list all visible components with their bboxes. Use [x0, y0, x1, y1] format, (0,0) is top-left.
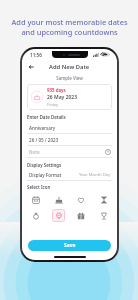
button[interactable]: 26 / 05 / 2023 [22, 134, 117, 145]
button[interactable]: Display Format [22, 170, 117, 180]
staticText: 11:56 [30, 52, 42, 58]
button[interactable]: Ring [29, 209, 42, 222]
staticText: Sample View [22, 75, 117, 81]
button[interactable]: Calendar [29, 193, 42, 206]
staticText: 26 / 05 / 2023 [29, 137, 59, 143]
button[interactable]: Gift [74, 209, 87, 222]
button[interactable]: Back [26, 62, 36, 72]
staticText: Save [64, 242, 76, 249]
button[interactable]: Save [28, 240, 111, 251]
button[interactable]: 935 days [27, 84, 112, 110]
staticText: Select Icon [27, 184, 51, 190]
button[interactable]: Note [22, 146, 117, 157]
staticText: and upcoming countdowns [21, 27, 118, 37]
button[interactable]: Hourglass [97, 193, 110, 206]
staticText: Add your most memorable dates [11, 17, 128, 27]
staticText: Enter Date Details [27, 114, 66, 120]
staticText: Anniversary [29, 125, 56, 131]
staticText: Add New Date [49, 63, 90, 71]
staticText: Display Format [29, 172, 62, 178]
staticText: 935 days [47, 87, 66, 93]
button[interactable]: Champagne [97, 209, 110, 222]
button[interactable]: Anniversary [22, 122, 117, 133]
staticText: Friday [47, 102, 58, 107]
staticText: Year Month Day [79, 172, 111, 178]
staticText: Display Settings [27, 162, 62, 168]
staticText: Note [29, 149, 40, 155]
staticText: 26 May 2023 [47, 94, 78, 101]
button[interactable]: Balloon [52, 209, 65, 222]
button[interactable]: Heart [74, 193, 87, 206]
button[interactable]: Cake [52, 193, 65, 206]
